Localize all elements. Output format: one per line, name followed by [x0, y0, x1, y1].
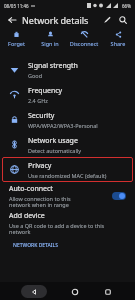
button[interactable]: Signal strength: [0, 57, 135, 82]
staticText: Security: [28, 111, 55, 121]
staticText: Network usage: [28, 136, 78, 146]
staticText: Forget: [1, 40, 32, 47]
staticText: Auto-connect: [9, 184, 53, 194]
button[interactable]: Home: [68, 285, 81, 298]
staticText: Use randomized MAC (default): [28, 172, 107, 179]
button[interactable]: Share: [101, 29, 135, 53]
button[interactable]: Security: [0, 107, 135, 132]
button[interactable]: Edit: [100, 13, 114, 27]
staticText: Use a QR code to add a device to this ne…: [9, 222, 105, 236]
button[interactable]: Network usage: [0, 132, 135, 157]
staticText: Network details: [22, 14, 89, 26]
staticText: Frequency: [28, 86, 63, 96]
button[interactable]: Add device: [0, 210, 135, 236]
staticText: NETWORK DETAILS: [13, 242, 59, 249]
button[interactable]: Privacy: [0, 157, 135, 182]
button[interactable]: Frequency: [0, 82, 135, 107]
staticText: Allow connection to this network when in…: [9, 195, 71, 209]
staticText: Privacy: [28, 161, 52, 171]
staticText: Good: [28, 72, 43, 79]
staticText: Disconnect: [68, 40, 100, 47]
staticText: 2.4 GHz: [28, 97, 48, 104]
button[interactable]: Disconnect: [67, 29, 101, 53]
staticText: Signal strength: [28, 61, 78, 71]
staticText: Share: [102, 40, 134, 47]
button[interactable]: Back: [21, 285, 47, 298]
staticText: Sign in: [34, 40, 66, 47]
button[interactable]: Back: [5, 13, 19, 27]
button[interactable]: Forget: [0, 29, 33, 53]
button[interactable]: Recents: [101, 285, 114, 298]
button[interactable]: Sign in: [33, 29, 67, 53]
button[interactable]: Search: [116, 13, 130, 27]
staticText: 66%: [122, 3, 131, 9]
staticText: Detect automatically: [28, 147, 82, 154]
staticText: Add device: [9, 211, 45, 221]
staticText: WPA/WPA2/WPA3-Personal: [28, 122, 98, 129]
staticText: 08/05 11:46: [4, 3, 29, 9]
button[interactable]: Auto-connect: [0, 182, 135, 210]
